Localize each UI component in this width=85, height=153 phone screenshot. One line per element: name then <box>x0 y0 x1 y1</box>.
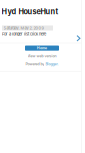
button[interactable]: View web version <box>27 53 57 58</box>
button[interactable]: For a longer list click here <box>2 31 48 36</box>
button[interactable]: Home <box>25 45 59 51</box>
button[interactable]: Powered by <box>24 61 60 66</box>
staticText: Hyd HouseHunt <box>1 7 58 16</box>
button[interactable]: Next page <box>0 0 85 153</box>
staticText: For a longer list click here <box>2 32 46 36</box>
staticText: Blogger. <box>46 62 59 66</box>
staticText: View web version <box>27 54 56 58</box>
staticText: Home <box>37 46 47 50</box>
staticText: Powered by <box>25 62 44 66</box>
staticText: Saturday, May 2, 2009 <box>3 26 43 30</box>
